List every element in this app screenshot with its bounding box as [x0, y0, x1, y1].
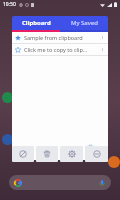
- button[interactable]: Search: [9, 175, 111, 190]
- button[interactable]: My Saved: [60, 16, 108, 30]
- button[interactable]: WhatsApp: [2, 92, 13, 103]
- button[interactable]: Delete all: [84, 142, 96, 154]
- staticText: Clipboard: [22, 19, 51, 27]
- staticText: My Saved: [71, 19, 98, 27]
- button[interactable]: Block: [12, 146, 34, 162]
- button[interactable]: Delete: [36, 146, 58, 162]
- button[interactable]: Clipboard: [12, 16, 60, 30]
- button[interactable]: Click me to copy to clip...: [12, 44, 108, 55]
- staticText: Sample from clipboard: [24, 34, 100, 41]
- button[interactable]: Remove: [85, 146, 108, 162]
- button[interactable]: Browser: [108, 156, 120, 168]
- staticText: Click me to copy to clip...: [24, 46, 100, 53]
- button[interactable]: Phone: [2, 134, 13, 145]
- button[interactable]: More options: [100, 44, 105, 55]
- staticText: 10:50: [3, 1, 16, 8]
- button[interactable]: Settings: [60, 146, 83, 162]
- button[interactable]: More options: [100, 32, 105, 43]
- button[interactable]: Sample from clipboard: [12, 32, 108, 43]
